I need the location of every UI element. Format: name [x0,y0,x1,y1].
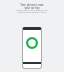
staticText: with just your phone in hand [0,11,64,14]
staticText: your car key [0,6,64,10]
staticText: Your phone is now [0,3,64,7]
staticText: Unlock, start and share your car [0,9,64,12]
